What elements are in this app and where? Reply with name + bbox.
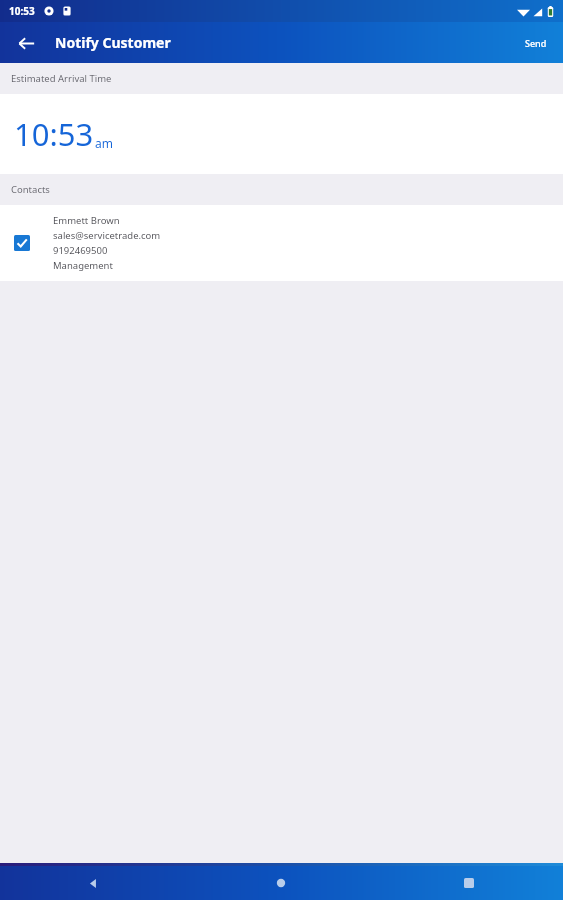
- button[interactable]: Send: [517, 31, 555, 55]
- staticText: Contacts: [11, 183, 50, 196]
- button[interactable]: Emmett Brown: [0, 205, 563, 281]
- staticText: Notify Customer: [55, 33, 171, 52]
- staticText: Management: [53, 259, 113, 272]
- staticText: Emmett Brown: [53, 214, 120, 227]
- staticText: Send: [525, 37, 547, 49]
- button[interactable]: Recent apps: [375, 866, 563, 900]
- button[interactable]: Back: [10, 27, 42, 59]
- staticText: 9192469500: [53, 244, 108, 257]
- button[interactable]: Back: [0, 866, 187, 900]
- staticText: am: [95, 135, 113, 151]
- staticText: sales@servicetrade.com: [53, 229, 161, 242]
- staticText: 10:53: [14, 113, 94, 155]
- staticText: 10:53: [9, 4, 35, 18]
- staticText: Estimated Arrival Time: [11, 72, 112, 85]
- button[interactable]: 10:53: [0, 94, 563, 174]
- button[interactable]: Home: [187, 866, 375, 900]
